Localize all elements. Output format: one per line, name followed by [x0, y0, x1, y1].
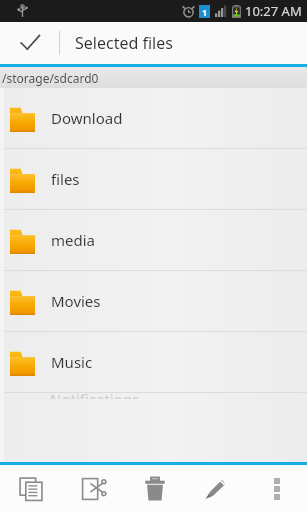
staticText: Notifications [50, 389, 140, 399]
button[interactable]: Confirm selection [0, 22, 59, 64]
staticText: 1 [202, 6, 208, 18]
staticText: Music [51, 352, 93, 372]
button[interactable]: Movies [0, 271, 307, 331]
button[interactable]: More options [246, 465, 307, 512]
staticText: Selected files [75, 32, 173, 54]
button[interactable]: Cut [62, 465, 124, 512]
staticText: files [51, 169, 80, 189]
staticText: Movies [51, 291, 101, 311]
staticText: Download [51, 108, 123, 128]
button[interactable]: Copy [0, 465, 62, 512]
button[interactable]: files [0, 149, 307, 209]
staticText: /storage/sdcard0 [2, 70, 99, 86]
button[interactable]: Music [0, 332, 307, 392]
staticText: media [51, 230, 95, 250]
button[interactable]: media [0, 210, 307, 270]
button[interactable]: Download [0, 88, 307, 148]
button[interactable]: Delete [124, 465, 185, 512]
staticText: 10:27 AM [245, 2, 302, 20]
button[interactable]: Rename [185, 465, 246, 512]
